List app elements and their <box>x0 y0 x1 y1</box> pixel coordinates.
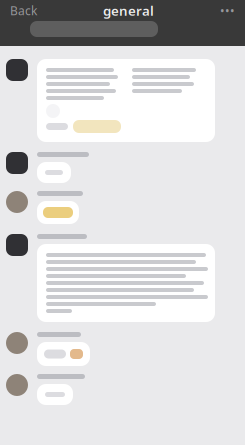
button[interactable]: Back <box>5 0 42 21</box>
staticText: general <box>103 2 154 19</box>
button[interactable] <box>30 21 158 37</box>
staticText: Back <box>10 2 37 18</box>
button[interactable]: ••• <box>215 0 240 21</box>
staticText: ••• <box>220 2 235 18</box>
